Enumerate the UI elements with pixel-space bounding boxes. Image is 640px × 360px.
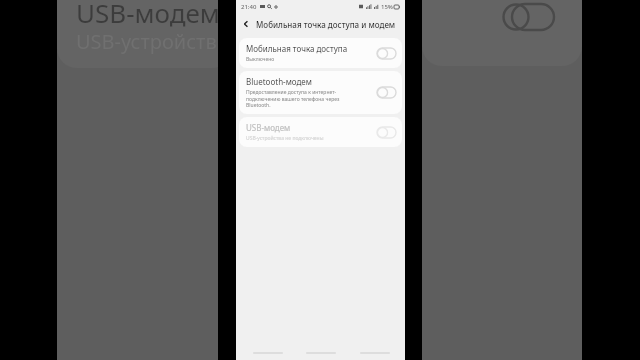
button[interactable]: Навигация — [298, 347, 343, 359]
staticText: USB-модем — [76, 0, 220, 30]
button[interactable]: USB-модем — [239, 117, 402, 147]
staticText: USB-устройств — [76, 28, 217, 55]
staticText: 15% — [381, 3, 393, 11]
staticText: Мобильная точка доступа — [246, 43, 348, 54]
button[interactable]: Переключатель — [377, 127, 396, 138]
button[interactable]: Мобильная точка доступа — [239, 38, 402, 68]
staticText: 21:40 — [241, 3, 257, 11]
staticText: Выключено — [246, 56, 275, 63]
button[interactable]: Переключатель — [377, 48, 396, 59]
staticText: Bluetooth-модем — [246, 76, 312, 87]
button[interactable]: Bluetooth-модем — [239, 71, 402, 114]
staticText: USB-устройства не подключены — [246, 135, 324, 142]
staticText: Предоставление доступа к интернет- подкл… — [246, 89, 340, 109]
button[interactable]: Назад — [236, 14, 256, 34]
button[interactable]: Навигация — [352, 347, 397, 359]
button[interactable]: Переключатель — [377, 87, 396, 98]
staticText: Мобильная точка доступа и модем — [256, 19, 396, 30]
staticText: USB-модем — [246, 122, 291, 133]
button[interactable]: Навигация — [245, 347, 290, 359]
